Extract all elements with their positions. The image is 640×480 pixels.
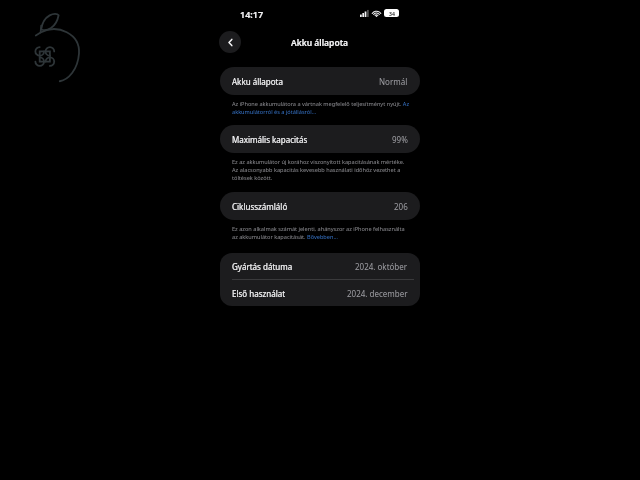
staticText: 2024. december [347, 288, 408, 299]
staticText: Normál [379, 76, 408, 87]
staticText: 14:17 [240, 8, 264, 20]
staticText: Akku állapota [232, 76, 283, 87]
staticText: Ez az akkumulátor új korához viszonyítot… [232, 158, 410, 182]
staticText: Ciklusszámláló [232, 201, 288, 212]
staticText: Gyártás dátuma [232, 261, 293, 272]
button[interactable]: Ciklusszámláló [220, 192, 420, 220]
staticText: 99% [392, 134, 408, 145]
button[interactable]: Maximális kapacitás [220, 125, 420, 153]
button[interactable]: Akku állapota [220, 67, 420, 95]
button[interactable]: Első használat [220, 280, 420, 306]
button[interactable]: Back [219, 31, 241, 53]
staticText: Akku állapota [291, 37, 349, 49]
staticText: Első használat [232, 288, 286, 299]
staticText: 34 [389, 10, 395, 17]
button[interactable]: Gyártás dátuma [220, 253, 420, 279]
staticText: 206 [394, 201, 408, 212]
staticText: Az iPhone akkumulátora a vártnak megfele… [232, 100, 410, 116]
staticText: Maximális kapacitás [232, 134, 308, 145]
staticText: Ez azon alkalmak számát jelenti, ahánysz… [232, 225, 410, 241]
staticText: 2024. október [355, 261, 408, 272]
